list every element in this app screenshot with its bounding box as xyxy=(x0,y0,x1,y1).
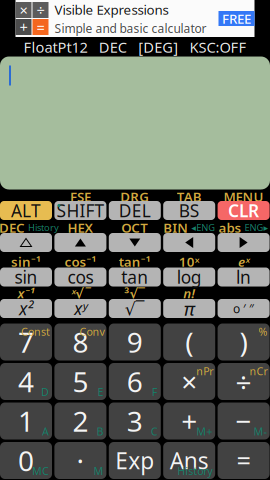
staticText: 7 xyxy=(18,323,34,361)
staticText: √‾ xyxy=(125,297,145,320)
staticText: F xyxy=(152,385,158,399)
staticText: FloatPt12 xyxy=(23,37,87,57)
staticText: D xyxy=(41,385,49,399)
staticText: A xyxy=(42,424,49,438)
button[interactable]: o ′ ″ xyxy=(218,299,270,318)
staticText: M+ xyxy=(196,424,212,438)
staticText: nCr xyxy=(250,364,268,378)
staticText: 2 xyxy=(72,402,88,440)
button[interactable]: 8 xyxy=(54,323,106,360)
button[interactable]: Exp xyxy=(109,442,161,479)
staticText: KSC:OFF xyxy=(190,37,247,57)
staticText: Simple and basic calculator xyxy=(54,20,206,36)
staticText: MC xyxy=(32,464,49,478)
staticText: ˣ√‾ xyxy=(71,284,90,302)
staticText: log xyxy=(177,265,202,288)
staticText: 10ˣ xyxy=(179,253,200,270)
staticText: History xyxy=(177,464,212,478)
button[interactable]: 4 xyxy=(0,363,52,400)
button[interactable]: ( xyxy=(163,323,215,360)
button[interactable]: × xyxy=(163,363,215,400)
button[interactable]: ÷ xyxy=(218,363,270,400)
button[interactable]: ln xyxy=(218,267,270,286)
button[interactable]: Right xyxy=(218,233,270,252)
staticText: MENU xyxy=(224,188,264,205)
staticText: abs xyxy=(219,219,242,236)
staticText: BIN xyxy=(163,219,188,236)
button[interactable]: 5 xyxy=(54,363,106,400)
staticText: xʸ xyxy=(74,297,87,320)
button[interactable]: SHIFT xyxy=(54,201,106,220)
button[interactable]: log xyxy=(163,267,215,286)
button[interactable]: Left xyxy=(163,233,215,252)
staticText: nPr xyxy=(196,364,213,378)
staticText: ³√‾ xyxy=(124,284,145,302)
staticText: Conv xyxy=(79,324,104,339)
button[interactable]: 3 xyxy=(109,402,161,439)
button[interactable]: 7 xyxy=(0,323,52,360)
button[interactable]: xʸ xyxy=(54,299,106,318)
staticText: + xyxy=(181,402,197,440)
staticText: Const xyxy=(21,324,50,339)
staticText: M- xyxy=(254,424,267,438)
staticText: CLR xyxy=(228,199,259,222)
staticText: n! xyxy=(183,284,195,302)
button[interactable]: − xyxy=(218,402,270,439)
button[interactable]: × xyxy=(15,0,254,37)
button[interactable]: x² xyxy=(0,299,52,318)
button[interactable]: Up xyxy=(54,233,106,252)
button[interactable]: BS xyxy=(163,201,215,220)
staticText: Ans xyxy=(170,445,209,475)
staticText: sin⁻¹ xyxy=(11,253,41,270)
staticText: 5 xyxy=(72,363,88,400)
staticText: x⁻¹ xyxy=(17,284,34,302)
button[interactable]: 1 xyxy=(0,402,52,439)
button[interactable]: ALT xyxy=(0,201,52,220)
button[interactable]: 0 xyxy=(0,442,52,479)
button[interactable]: 9 xyxy=(109,323,161,360)
button[interactable]: · xyxy=(54,442,106,479)
staticText: = xyxy=(237,444,251,477)
button[interactable]: π xyxy=(163,299,215,318)
staticText: tan⁻¹ xyxy=(119,253,151,270)
staticText: C xyxy=(151,424,158,438)
staticText: 0 xyxy=(18,442,34,479)
button[interactable]: + xyxy=(163,402,215,439)
button[interactable]: CLR xyxy=(218,201,270,220)
button[interactable]: 6 xyxy=(109,363,161,400)
button[interactable]: Down xyxy=(109,233,161,252)
button[interactable]: tan xyxy=(109,267,161,286)
button[interactable]: = xyxy=(218,442,270,479)
staticText: Exp xyxy=(115,445,154,475)
button[interactable]: 2 xyxy=(54,402,106,439)
staticText: HEX xyxy=(67,219,93,236)
staticText: 8 xyxy=(72,323,88,361)
button[interactable]: ) xyxy=(218,323,270,360)
staticText: M xyxy=(93,464,103,478)
button[interactable]: sin xyxy=(0,267,52,286)
staticText: FREE xyxy=(222,10,251,27)
button[interactable]: Ans xyxy=(163,442,215,479)
staticText: ◂ENG xyxy=(191,221,215,234)
staticText: [DEG] xyxy=(138,37,178,57)
staticText: ( xyxy=(185,323,193,361)
staticText: OCT xyxy=(121,219,148,236)
staticText: DRG xyxy=(120,188,149,205)
staticText: TAB xyxy=(177,188,202,205)
button[interactable]: √‾ xyxy=(109,299,161,318)
staticText: π xyxy=(184,296,195,321)
staticText: ÷ xyxy=(236,363,252,400)
staticText: eˣ xyxy=(238,253,249,270)
button[interactable]: DEL xyxy=(109,201,161,220)
staticText: × xyxy=(181,363,197,400)
button[interactable]: Mode xyxy=(0,233,52,252)
button[interactable]: cos xyxy=(54,267,106,286)
staticText: · xyxy=(76,442,84,479)
staticText: 3 xyxy=(127,402,143,440)
staticText: FSE xyxy=(70,188,91,205)
staticText: SHIFT xyxy=(56,199,104,222)
staticText: cos⁻¹ xyxy=(64,253,96,270)
staticText: ln xyxy=(236,265,251,288)
staticText: DEC xyxy=(99,37,127,57)
staticText: x² xyxy=(19,297,33,320)
